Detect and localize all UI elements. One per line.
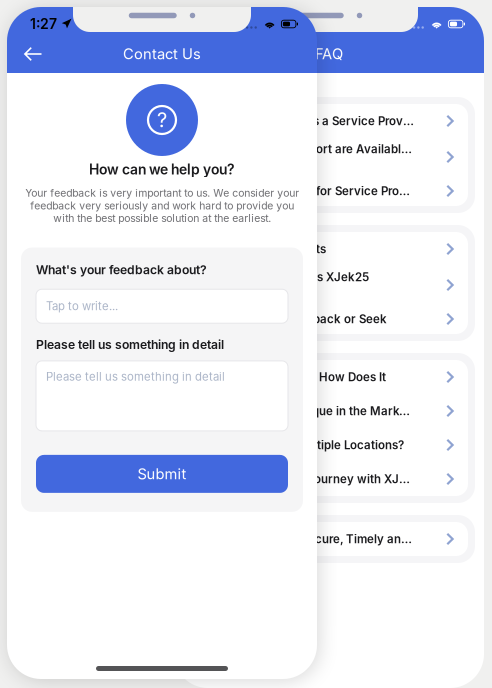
- button[interactable]: Please tell us something in detail: [36, 361, 288, 431]
- button[interactable]: What are the Benefits: [190, 232, 468, 266]
- staticText: Contact Us: [123, 45, 201, 63]
- staticText: What are the Benefits: [204, 242, 326, 256]
- button[interactable]: How Do I Start my Journey with XJek25?: [190, 462, 468, 496]
- staticText: 1:27: [30, 15, 57, 32]
- staticText: Submit: [137, 465, 186, 483]
- button[interactable]: What is XJek25 and How Does It: [190, 360, 468, 394]
- staticText: Are There Any Fees for Service Provide..…: [204, 184, 414, 198]
- button[interactable]: Are Transactions Secure, Timely and Secu…: [190, 522, 468, 556]
- staticText: How Do I Start my Journey with XJek25?: [204, 472, 414, 486]
- staticText: Are Transactions Secure, Timely and Secu…: [204, 532, 414, 546]
- button[interactable]: What Makes Us Unique in the Market?: [190, 394, 468, 428]
- staticText: What's your feedback about?: [36, 262, 207, 277]
- button[interactable]: Back: [12, 35, 54, 73]
- staticText: What Makes Us Unique in the Market?: [204, 404, 414, 418]
- staticText: Can I Operate in Multiple Locations?: [204, 438, 404, 452]
- button[interactable]: What Measures Does XJek25: [190, 266, 468, 304]
- button[interactable]: Tap to write...: [36, 289, 288, 323]
- staticText: What Types of Support are Available for: [204, 142, 414, 156]
- button[interactable]: How Do I Give Feedback or Seek: [190, 304, 468, 334]
- staticText: Please tell us something in detail: [46, 370, 225, 384]
- button[interactable]: Can I Operate in Multiple Locations?: [190, 428, 468, 462]
- staticText: How can we help you?: [89, 161, 235, 178]
- staticText: Take for Safety?: [204, 286, 295, 300]
- staticText: How Do I Register as a Service Provider?: [204, 114, 414, 128]
- button[interactable]: What Types of Support are Available for: [190, 138, 468, 176]
- staticText: What Measures Does XJek25: [204, 270, 369, 284]
- staticText: Service Providers?: [204, 158, 309, 172]
- staticText: ?: [157, 108, 167, 132]
- staticText: Tap to write...: [46, 299, 118, 313]
- staticText: Your feedback is very important to us. W…: [25, 187, 299, 224]
- staticText: What is XJek25 and How Does It: [204, 370, 386, 384]
- staticText: How Do I Give Feedback or Seek: [204, 312, 387, 326]
- staticText: Please tell us something in detail: [36, 337, 224, 352]
- staticText: FAQ: [315, 45, 343, 63]
- button[interactable]: Are There Any Fees for Service Provide..…: [190, 176, 468, 206]
- button[interactable]: Submit: [36, 455, 288, 493]
- button[interactable]: How Do I Register as a Service Provider?: [190, 104, 468, 138]
